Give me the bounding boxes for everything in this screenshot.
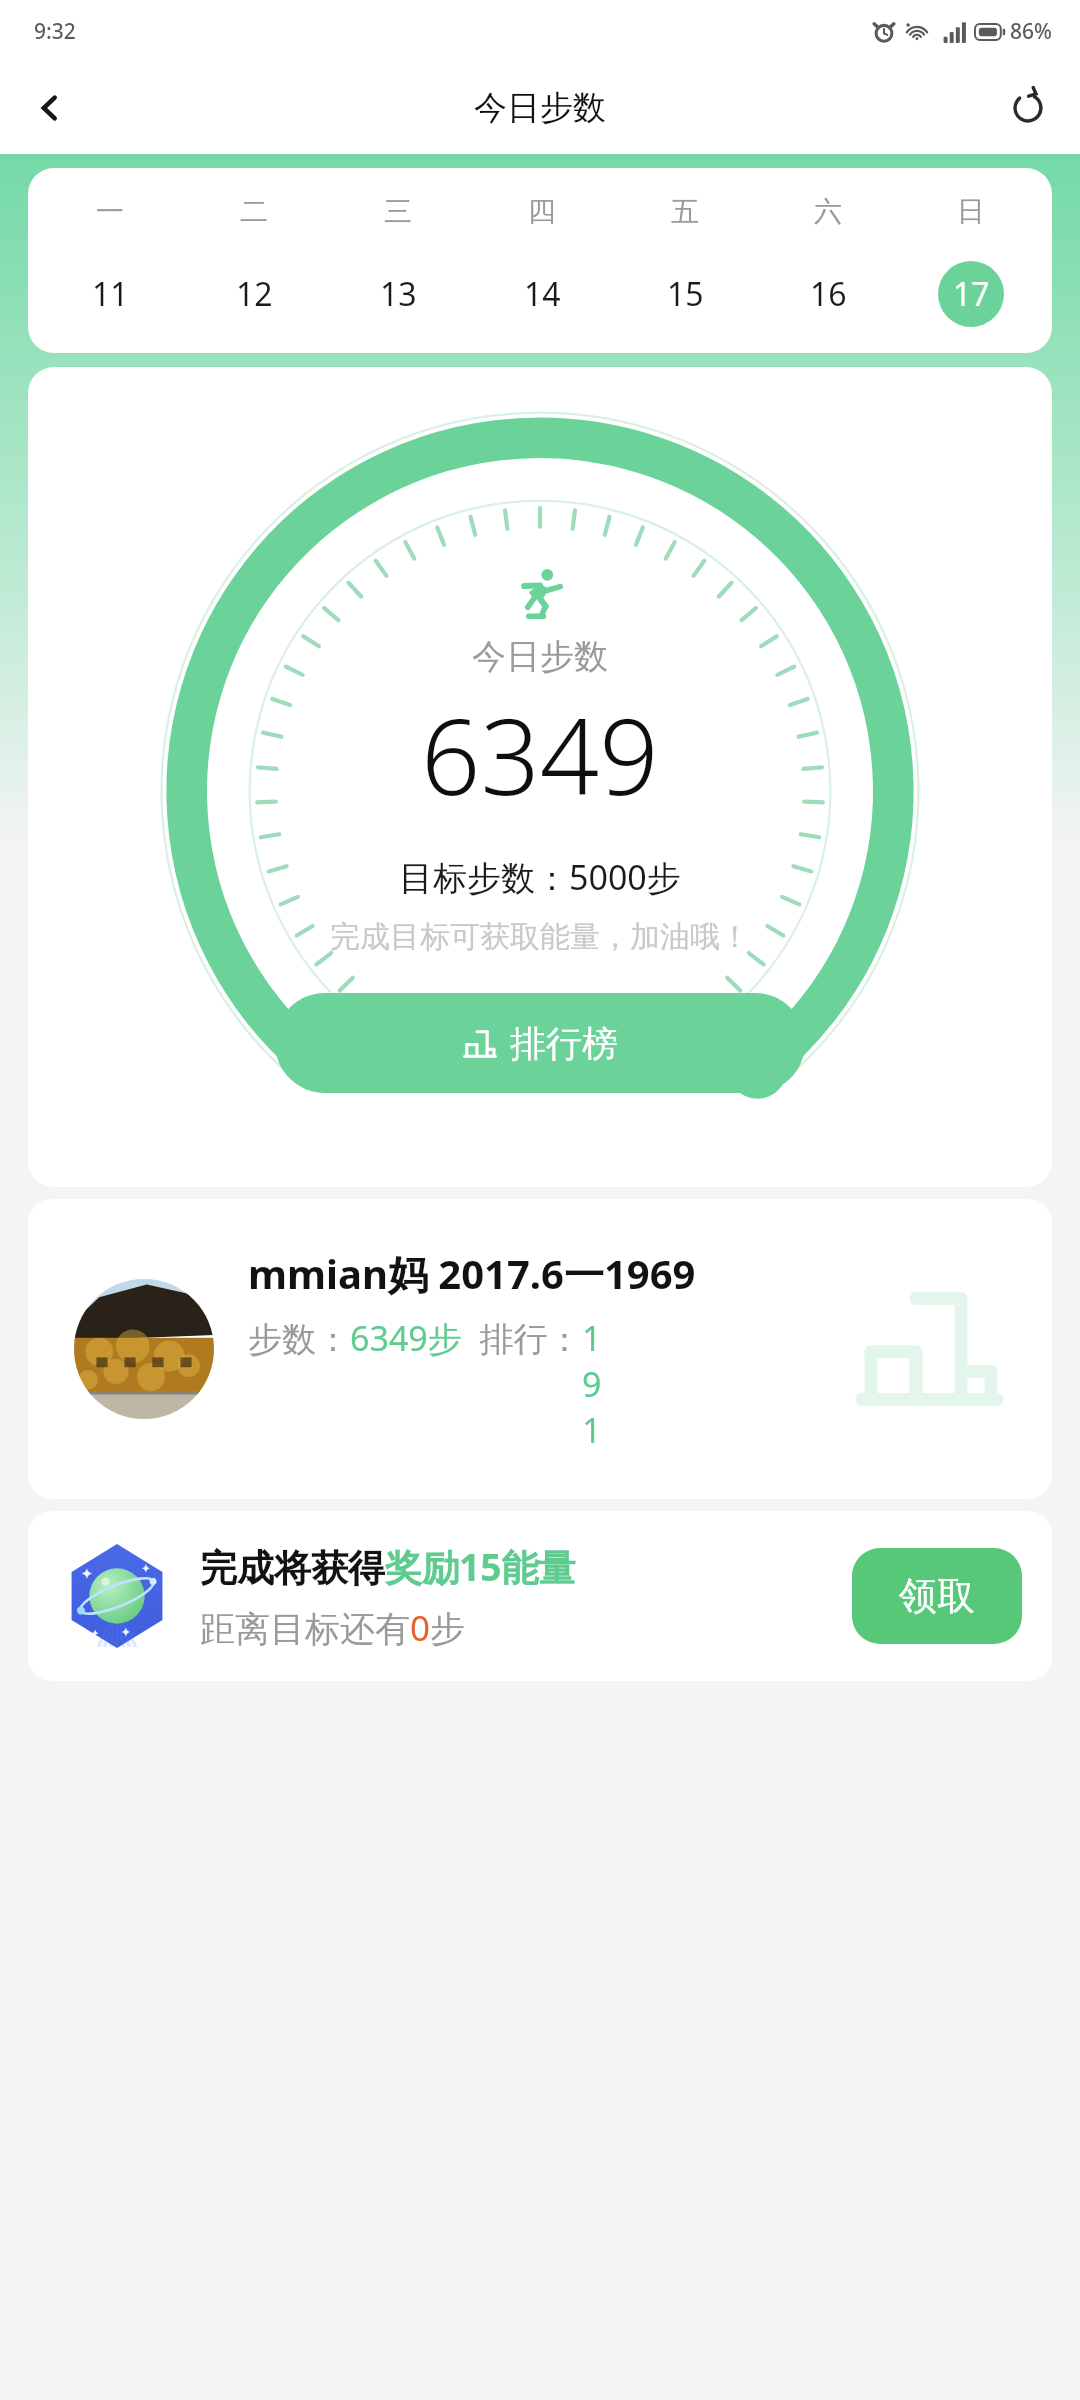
staticText: 领取 [899, 1572, 975, 1620]
button[interactable]: Back [18, 76, 82, 140]
staticText: 五 [671, 194, 699, 229]
staticText: 11 [92, 272, 129, 316]
staticText: 排行榜 [510, 1021, 618, 1066]
button[interactable]: mmian妈 2017.6一1969 [28, 1199, 1052, 1499]
staticText: 步数：6349步 排行： [248, 1315, 582, 1361]
button[interactable]: 13 [365, 261, 431, 327]
staticText: mmian妈 2017.6一1969 [248, 1246, 696, 1301]
staticText: 14 [524, 272, 561, 316]
staticText: 今日步数 [472, 635, 608, 678]
staticText: 二 [240, 194, 268, 229]
button[interactable]: 14 [509, 261, 575, 327]
staticText: 15 [667, 272, 704, 316]
staticText: 17 [953, 272, 990, 316]
button[interactable]: 一 [28, 168, 1052, 353]
staticText: 今日步数 [474, 87, 606, 129]
staticText: 6349 [421, 684, 659, 826]
staticText: 四 [528, 194, 556, 229]
staticText: 9:32 [34, 17, 76, 46]
staticText: 日 [957, 194, 985, 229]
button[interactable]: 领取 [852, 1548, 1022, 1644]
staticText: 一 [96, 194, 124, 229]
staticText: 13 [380, 272, 417, 316]
staticText: 距离目标还有0步 [200, 1604, 466, 1652]
staticText: 三 [384, 194, 412, 229]
staticText: 完成目标可获取能量，加油哦！ [330, 918, 750, 956]
staticText: 六 [814, 194, 842, 229]
button[interactable]: 11 [77, 261, 143, 327]
staticText: 12 [236, 272, 273, 316]
staticText: 191 [582, 1315, 608, 1453]
button[interactable]: 15 [652, 261, 718, 327]
staticText: 目标步数：5000步 [399, 854, 681, 900]
button[interactable]: 17 [938, 261, 1004, 327]
button[interactable]: 排行榜 [275, 993, 805, 1093]
button[interactable]: Share [996, 76, 1060, 140]
button[interactable]: 16 [795, 261, 861, 327]
staticText: 完成将获得奖励15能量 [200, 1541, 576, 1592]
button[interactable]: 12 [221, 261, 287, 327]
staticText: 16 [810, 272, 847, 316]
staticText: 86% [1010, 17, 1052, 46]
